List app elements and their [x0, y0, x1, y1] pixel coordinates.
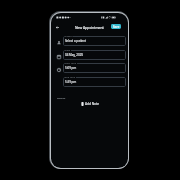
staticText: NOTES [57, 96, 66, 99]
staticText: 5:09 pm [65, 66, 77, 70]
button[interactable]: 5:39 pm [63, 77, 126, 87]
button[interactable]: Select a patient [63, 36, 126, 46]
staticText: End Time [65, 76, 76, 79]
staticText: Save [113, 25, 120, 29]
staticText: 04 May, 2025 [65, 53, 84, 57]
staticText: Add Note [85, 102, 99, 106]
button[interactable]: Back [54, 24, 60, 30]
staticText: Patient [65, 35, 73, 38]
staticText: Start Time [65, 62, 77, 65]
button[interactable]: 04 May, 2025 [63, 50, 126, 60]
staticText: Select a patient [65, 39, 87, 43]
staticText: 5:39 pm [65, 80, 77, 84]
staticText: Date [65, 49, 71, 52]
staticText: New Appointment [75, 25, 104, 29]
button[interactable]: Add Note [51, 101, 128, 107]
button[interactable]: 5:09 pm [63, 63, 126, 73]
button[interactable]: Save [111, 24, 121, 29]
